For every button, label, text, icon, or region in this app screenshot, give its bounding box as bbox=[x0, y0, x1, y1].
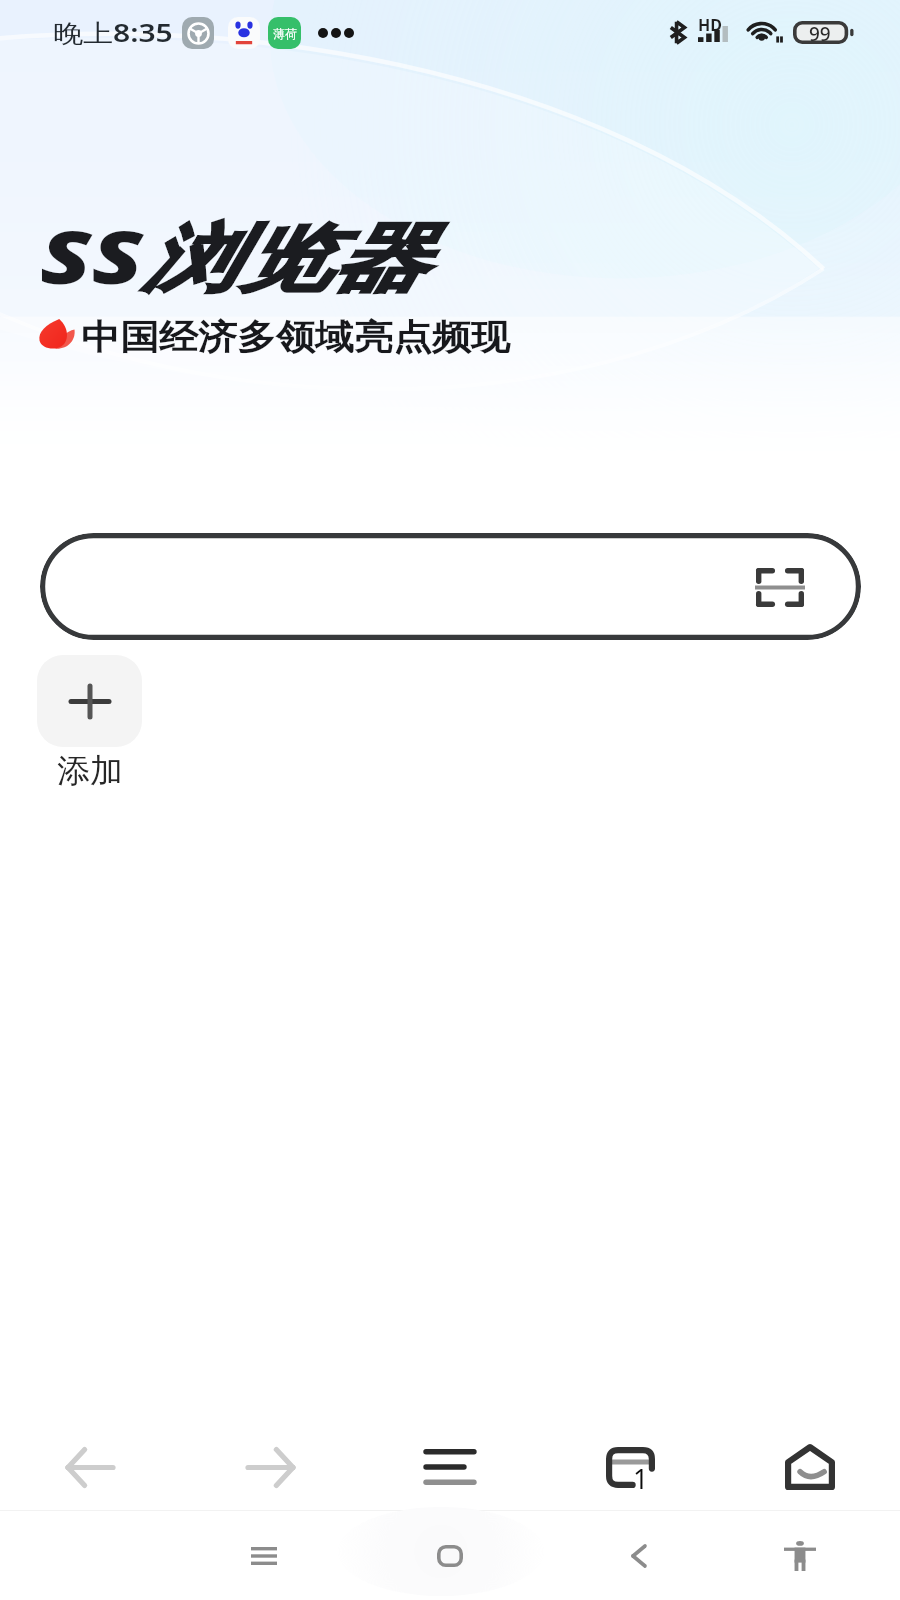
button[interactable]: Back bbox=[0, 1404, 180, 1510]
button[interactable]: Menu bbox=[360, 1404, 540, 1510]
staticText: SS浏览器 bbox=[40, 206, 426, 306]
button[interactable]: Tabs bbox=[540, 1404, 720, 1510]
staticText: 中国经济多领域亮点频现 bbox=[81, 316, 510, 359]
staticText: HD bbox=[698, 14, 722, 36]
button[interactable]: Recent apps bbox=[214, 1511, 314, 1600]
staticText: 1 bbox=[633, 1460, 649, 1497]
staticText: 薄荷 bbox=[273, 26, 297, 41]
button[interactable]: Search or type a URL bbox=[40, 533, 861, 640]
button[interactable]: Back bbox=[589, 1511, 689, 1600]
button[interactable]: Scan QR code bbox=[751, 558, 809, 616]
staticText: 99 bbox=[809, 21, 831, 44]
button[interactable]: 添加 bbox=[37, 655, 142, 792]
staticText: 晚上8:35 bbox=[53, 16, 173, 49]
button[interactable]: Home bbox=[400, 1511, 500, 1600]
button[interactable]: Accessibility bbox=[750, 1511, 850, 1600]
staticText: 添加 bbox=[57, 750, 123, 792]
button[interactable]: Home bbox=[720, 1404, 900, 1510]
button[interactable]: Forward bbox=[180, 1404, 360, 1510]
